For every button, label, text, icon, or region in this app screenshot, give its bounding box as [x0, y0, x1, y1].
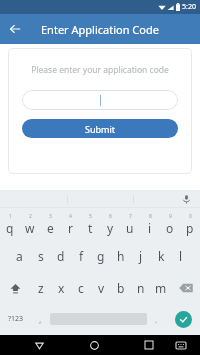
- button[interactable]: Shift: [0, 272, 30, 304]
- button[interactable]: Back: [30, 336, 48, 354]
- button[interactable]: 5: [80, 208, 100, 240]
- staticText: l: [179, 248, 183, 264]
- staticText: 6: [109, 213, 112, 220]
- staticText: 7: [129, 213, 132, 220]
- staticText: d: [57, 248, 65, 264]
- button[interactable]: Back: [5, 19, 25, 39]
- staticText: f: [79, 248, 84, 264]
- staticText: s: [38, 248, 44, 264]
- button[interactable]: 9: [160, 208, 180, 240]
- button[interactable]: Submit: [22, 119, 178, 138]
- staticText: Submit: [85, 123, 116, 135]
- button[interactable]: b: [111, 272, 131, 304]
- button[interactable]: f: [71, 240, 91, 272]
- button[interactable]: 1: [0, 208, 20, 240]
- button[interactable]: c: [71, 272, 91, 304]
- staticText: v: [98, 280, 105, 296]
- button[interactable]: g: [91, 240, 111, 272]
- button[interactable]: 8: [140, 208, 160, 240]
- staticText: 4: [69, 213, 72, 220]
- staticText: 9: [169, 213, 172, 220]
- button[interactable]: 7: [120, 208, 140, 240]
- staticText: 5:20: [182, 2, 196, 12]
- staticText: i: [148, 220, 152, 236]
- staticText: g: [97, 248, 105, 264]
- button[interactable]: n: [131, 272, 151, 304]
- button[interactable]: a: [9, 240, 30, 272]
- staticText: k: [158, 248, 165, 264]
- staticText: Please enter your application code: [31, 64, 169, 76]
- button[interactable]: v: [91, 272, 111, 304]
- button[interactable]: 6: [100, 208, 120, 240]
- staticText: 8: [149, 213, 152, 220]
- button[interactable]: l: [171, 240, 191, 272]
- button[interactable]: 3: [40, 208, 60, 240]
- button[interactable]: Application code input: [22, 90, 178, 110]
- staticText: u: [126, 220, 134, 236]
- button[interactable]: h: [111, 240, 131, 272]
- staticText: 2: [29, 213, 32, 220]
- staticText: r: [68, 220, 73, 236]
- staticText: ?123: [8, 314, 24, 324]
- staticText: x: [58, 280, 65, 296]
- staticText: 3: [49, 213, 52, 220]
- button[interactable]: k: [151, 240, 171, 272]
- button[interactable]: m: [151, 272, 171, 304]
- staticText: t: [88, 220, 93, 236]
- staticText: y: [107, 220, 114, 236]
- staticText: w: [25, 220, 35, 236]
- button[interactable]: Switch keyboard: [172, 336, 190, 354]
- button[interactable]: 2: [20, 208, 40, 240]
- staticText: o: [166, 220, 174, 236]
- button[interactable]: Home: [85, 336, 103, 354]
- staticText: b: [117, 280, 125, 296]
- staticText: n: [137, 280, 145, 296]
- button[interactable]: 4: [60, 208, 80, 240]
- staticText: 0: [189, 213, 192, 220]
- staticText: q: [6, 220, 14, 236]
- staticText: z: [38, 280, 44, 296]
- staticText: c: [78, 280, 84, 296]
- staticText: Enter Application Code: [41, 22, 159, 37]
- button[interactable]: s: [30, 240, 51, 272]
- button[interactable]: x: [51, 272, 71, 304]
- button[interactable]: d: [51, 240, 71, 272]
- button[interactable]: j: [131, 240, 151, 272]
- button[interactable]: Voice input: [179, 192, 193, 206]
- staticText: a: [16, 248, 23, 264]
- staticText: .: [155, 313, 158, 325]
- button[interactable]: ?123: [0, 304, 31, 334]
- staticText: 1: [9, 213, 12, 220]
- staticText: ,: [39, 313, 42, 325]
- staticText: e: [47, 220, 54, 236]
- staticText: j: [139, 248, 143, 264]
- button[interactable]: ,: [31, 304, 50, 334]
- staticText: h: [117, 248, 125, 264]
- button[interactable]: Recents: [140, 336, 158, 354]
- staticText: 5: [89, 213, 92, 220]
- button[interactable]: 0: [180, 208, 200, 240]
- button[interactable]: Backspace: [171, 272, 200, 304]
- button[interactable]: Enter: [175, 311, 192, 328]
- staticText: m: [155, 280, 167, 296]
- staticText: p: [186, 220, 194, 236]
- button[interactable]: z: [30, 272, 51, 304]
